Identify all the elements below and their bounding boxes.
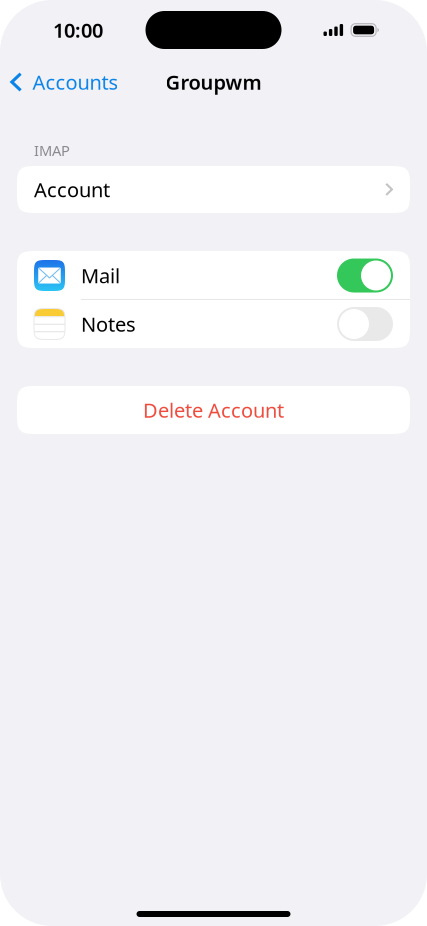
button[interactable]: Account — [17, 166, 410, 213]
staticText: Mail — [81, 262, 120, 289]
staticText: Groupwm — [165, 69, 261, 95]
button[interactable]: Notes — [337, 307, 393, 341]
staticText: 10:00 — [53, 17, 103, 43]
staticText: Notes — [81, 311, 136, 337]
button[interactable]: Mail — [337, 258, 393, 292]
button[interactable]: Delete Account — [17, 386, 410, 434]
staticText: Account — [34, 176, 110, 203]
staticText: IMAP — [34, 140, 70, 160]
button[interactable]: Accounts — [0, 60, 128, 104]
staticText: Delete Account — [143, 397, 284, 423]
staticText: Accounts — [32, 69, 118, 95]
